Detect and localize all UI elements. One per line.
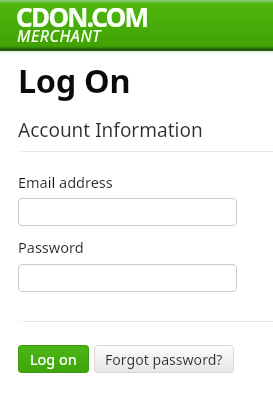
button[interactable]: Log on xyxy=(18,345,89,373)
button[interactable]: CDON.COM Merchant home xyxy=(10,4,150,44)
staticText: CDON.COM xyxy=(16,0,148,34)
staticText: Forgot password? xyxy=(105,350,223,369)
staticText: MERCHANT xyxy=(17,25,101,47)
button[interactable]: Forgot password? xyxy=(94,345,234,373)
staticText: Password xyxy=(18,237,84,257)
staticText: Account Information xyxy=(18,117,203,143)
staticText: Log On xyxy=(18,58,131,102)
staticText: Email address xyxy=(18,172,113,192)
staticText: Log on xyxy=(30,349,77,369)
button[interactable]: Password input xyxy=(18,264,237,292)
button[interactable]: Email address input xyxy=(18,198,237,226)
